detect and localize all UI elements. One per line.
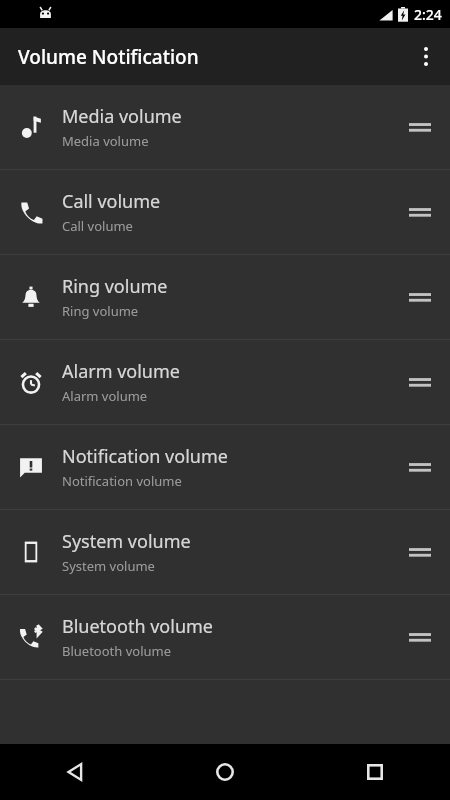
staticText: 2:24 (414, 5, 442, 24)
staticText: Alarm volume (62, 359, 180, 384)
staticText: Ring volume (62, 302, 139, 320)
button[interactable]: Bluetooth volume (0, 595, 450, 679)
staticText: Bluetooth volume (62, 642, 172, 660)
button[interactable]: Ring volume (0, 255, 450, 339)
staticText: Media volume (62, 132, 149, 150)
staticText: Notification volume (62, 444, 228, 469)
button[interactable]: Recent apps (300, 744, 450, 800)
staticText: Call volume (62, 217, 133, 235)
button[interactable]: Alarm volume (0, 340, 450, 424)
button[interactable]: Call volume (0, 170, 450, 254)
staticText: System volume (62, 557, 155, 575)
button[interactable]: Home (150, 744, 300, 800)
staticText: Media volume (62, 104, 182, 129)
staticText: Call volume (62, 189, 161, 214)
button[interactable]: Media volume (0, 85, 450, 169)
button[interactable]: System volume (0, 510, 450, 594)
button[interactable]: More options (402, 28, 450, 85)
staticText: Notification volume (62, 472, 182, 490)
staticText: Ring volume (62, 274, 168, 299)
staticText: Alarm volume (62, 387, 148, 405)
staticText: System volume (62, 529, 191, 554)
button[interactable]: Back (0, 744, 150, 800)
button[interactable]: Notification volume (0, 425, 450, 509)
staticText: Bluetooth volume (62, 614, 213, 639)
staticText: Volume Notification (18, 44, 199, 70)
